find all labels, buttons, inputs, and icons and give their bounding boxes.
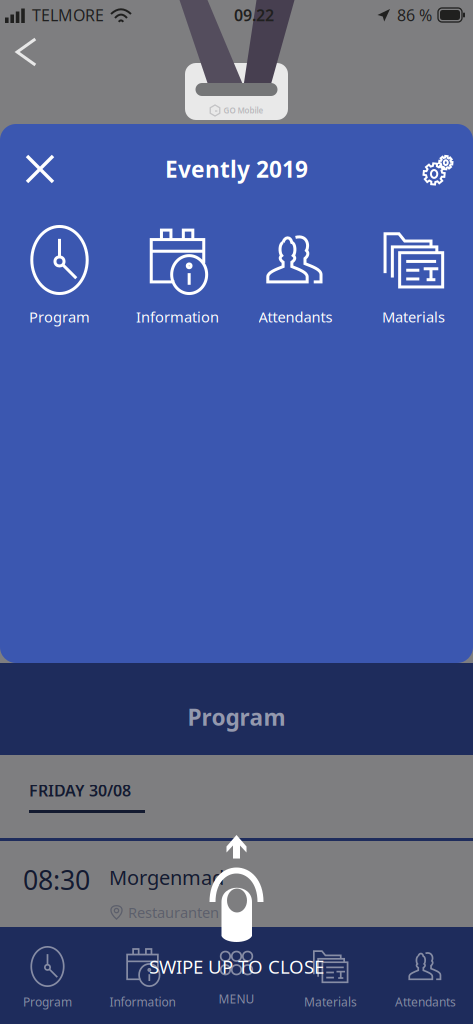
staticText: 86 % xyxy=(397,4,432,26)
button[interactable]: MENU xyxy=(190,927,283,1024)
button[interactable]: Back xyxy=(2,30,52,74)
button[interactable]: Attendants xyxy=(236,214,354,344)
staticText: Attendants xyxy=(395,994,456,1010)
staticText: Program xyxy=(23,994,72,1010)
staticText: 09.22 xyxy=(234,4,274,26)
staticText: Information xyxy=(109,994,175,1010)
button[interactable]: Program xyxy=(0,927,95,1024)
staticText: SWIPE UP TO CLOSE xyxy=(149,954,324,979)
button[interactable]: Materials xyxy=(283,927,378,1024)
button[interactable]: Settings xyxy=(412,139,464,199)
button[interactable]: Program xyxy=(0,214,118,344)
staticText: Materials xyxy=(304,994,357,1010)
staticText: Materials xyxy=(382,307,445,326)
button[interactable]: Information xyxy=(95,927,190,1024)
button[interactable]: Attendants xyxy=(378,927,473,1024)
staticText: GO Mobile xyxy=(223,105,263,116)
staticText: Information xyxy=(136,307,219,326)
staticText: TELMORE xyxy=(32,4,104,26)
staticText: Restauranten xyxy=(128,902,219,922)
staticText: Attendants xyxy=(258,307,332,326)
staticText: Morgenmad xyxy=(109,864,224,891)
button[interactable]: Information xyxy=(118,214,236,344)
staticText: FRIDAY 30/08 xyxy=(29,780,131,801)
button[interactable]: FRIDAY 30/08 xyxy=(0,780,473,813)
button[interactable]: Materials xyxy=(354,214,472,344)
staticText: Evently 2019 xyxy=(165,154,308,184)
button[interactable]: 08:30 xyxy=(0,841,473,927)
staticText: Program xyxy=(29,307,90,326)
staticText: Program xyxy=(187,702,285,732)
button[interactable]: Close xyxy=(9,139,71,199)
staticText: MENU xyxy=(218,991,254,1007)
staticText: 08:30 xyxy=(23,862,90,897)
